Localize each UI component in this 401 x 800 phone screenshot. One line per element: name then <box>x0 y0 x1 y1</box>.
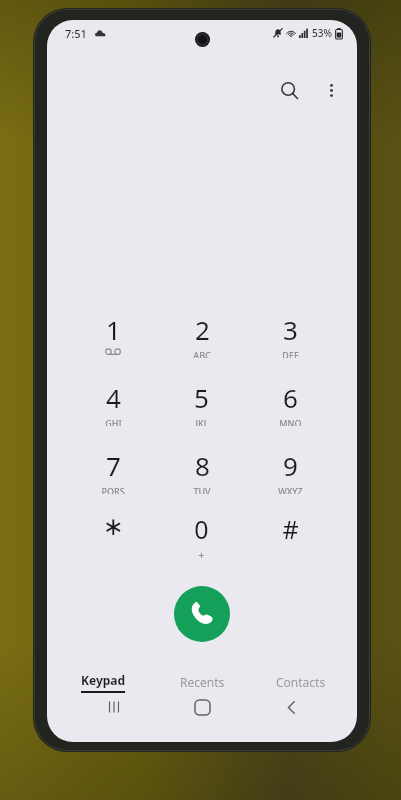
staticText: WXYZ <box>278 485 303 494</box>
button[interactable]: ∗ <box>69 512 157 558</box>
button[interactable]: Keypad <box>60 665 146 699</box>
staticText: 53% <box>312 26 332 40</box>
staticText: MNO <box>279 417 302 426</box>
button[interactable]: 9 <box>246 448 335 494</box>
button[interactable]: Recent apps <box>92 690 136 724</box>
button[interactable]: # <box>246 512 335 558</box>
staticText: TUV <box>193 485 211 494</box>
button[interactable]: Call <box>174 586 230 642</box>
button[interactable]: 5 <box>157 380 246 426</box>
button[interactable]: 3 <box>246 312 335 358</box>
staticText: + <box>198 547 205 558</box>
button[interactable]: 1 <box>69 312 157 358</box>
button[interactable]: Recents <box>159 665 245 699</box>
button[interactable]: Contacts <box>258 665 344 699</box>
button[interactable]: 4 <box>69 380 157 426</box>
staticText: 5 <box>194 380 209 415</box>
staticText: 7:51 <box>65 26 87 41</box>
staticText: 7 <box>106 448 121 483</box>
button[interactable]: 8 <box>157 448 246 494</box>
staticText: # <box>282 512 299 546</box>
button[interactable]: 0 <box>157 512 246 558</box>
staticText: PQRS <box>101 485 125 494</box>
staticText: 9 <box>283 448 298 483</box>
staticText: 4 <box>106 380 121 415</box>
staticText: 2 <box>195 312 210 347</box>
staticText: 0 <box>194 512 209 546</box>
staticText: ∗ <box>103 512 124 541</box>
staticText: Recents <box>180 674 225 690</box>
staticText: 8 <box>195 448 210 483</box>
button[interactable]: Search <box>267 68 311 112</box>
staticText: DEF <box>282 349 299 358</box>
button[interactable]: 7 <box>69 448 157 494</box>
staticText: 1 <box>106 312 121 347</box>
button[interactable]: 6 <box>246 380 335 426</box>
staticText: Contacts <box>276 674 326 690</box>
button[interactable]: 2 <box>157 312 246 358</box>
staticText: Keypad <box>81 672 126 688</box>
staticText: GHI <box>105 417 122 426</box>
button[interactable]: Back <box>269 690 313 724</box>
button[interactable]: Home <box>180 690 224 724</box>
staticText: JKL <box>195 417 209 426</box>
button[interactable]: More options <box>311 70 351 110</box>
staticText: 6 <box>283 380 298 415</box>
staticText: 3 <box>283 312 298 347</box>
staticText: ABC <box>193 349 211 358</box>
